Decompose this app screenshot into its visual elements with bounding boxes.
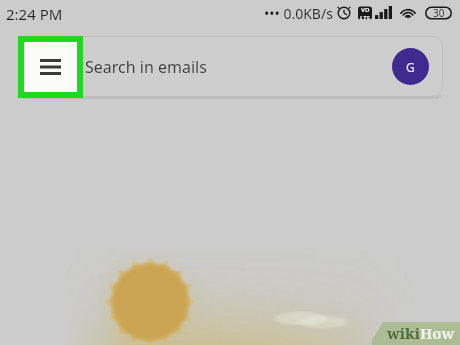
staticText: 2:24 PM [6,4,63,24]
staticText: ••• 0.0KB/s [264,4,333,23]
staticText: G [406,59,415,75]
button[interactable]: Account [392,48,429,85]
button[interactable]: Menu [24,42,77,92]
button[interactable]: Search in emails [18,36,443,97]
staticText: wiki [387,323,420,343]
staticText: How [420,323,455,343]
staticText: Search in emails [85,56,207,78]
staticText: LTE [360,14,371,20]
staticText: VO [361,6,370,14]
staticText: 30 [433,6,445,20]
